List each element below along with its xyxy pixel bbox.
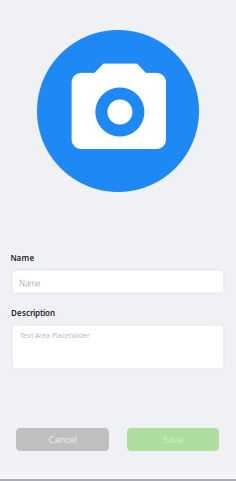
staticText: Cancel [48, 433, 76, 446]
button[interactable]: Save [127, 428, 219, 451]
button[interactable]: Cancel [16, 428, 109, 451]
staticText: Name [19, 278, 41, 289]
staticText: Text Area Placeholder [20, 331, 90, 340]
staticText: Description [11, 308, 55, 318]
staticText: Name [10, 253, 34, 263]
staticText: Save [163, 433, 183, 446]
